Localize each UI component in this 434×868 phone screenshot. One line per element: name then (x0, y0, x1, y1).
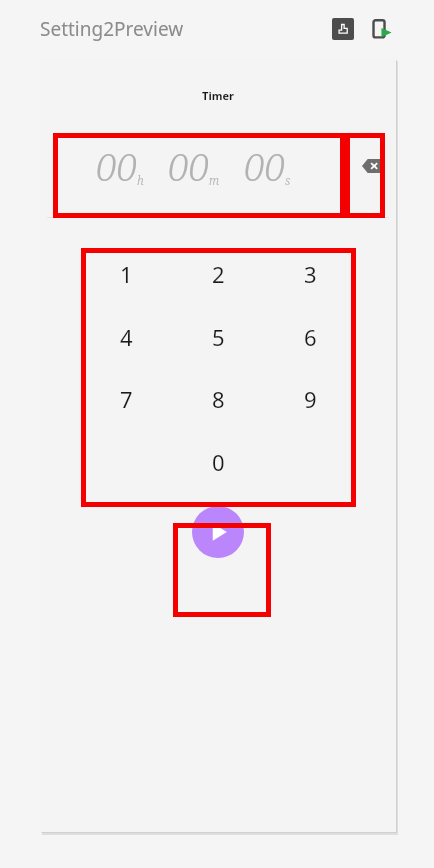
button[interactable]: 6 (264, 310, 356, 364)
button[interactable]: Start timer (192, 506, 244, 558)
staticText: 1 (120, 259, 133, 289)
button[interactable]: 3 (264, 247, 356, 301)
staticText: 8 (212, 384, 225, 414)
button[interactable]: 4 (80, 310, 172, 364)
staticText: 3 (304, 259, 317, 289)
staticText: 00 (96, 140, 137, 192)
staticText: Timer (202, 88, 234, 103)
button[interactable]: Interactive mode (332, 18, 354, 40)
button[interactable]: Backspace (346, 136, 396, 196)
staticText: m (209, 172, 220, 188)
staticText: h (137, 172, 144, 188)
button[interactable]: 2 (172, 247, 264, 301)
staticText: 7 (120, 384, 133, 414)
staticText: Setting2Preview (40, 16, 184, 42)
staticText: 2 (212, 259, 225, 289)
button[interactable]: 1 (80, 247, 172, 301)
button[interactable]: Run preview on device (370, 18, 392, 40)
button[interactable]: 8 (172, 372, 264, 426)
staticText: 5 (212, 322, 225, 352)
staticText: 00 (244, 140, 285, 192)
staticText: 6 (304, 322, 317, 352)
button[interactable]: 0 (172, 435, 264, 489)
staticText: 0 (212, 447, 225, 477)
staticText: 4 (120, 322, 133, 352)
button[interactable]: 7 (80, 372, 172, 426)
staticText: 00 (168, 140, 209, 192)
button[interactable]: 00 (40, 136, 346, 196)
button[interactable]: 5 (172, 310, 264, 364)
button[interactable]: 9 (264, 372, 356, 426)
staticText: s (285, 172, 291, 188)
staticText: 9 (304, 384, 317, 414)
